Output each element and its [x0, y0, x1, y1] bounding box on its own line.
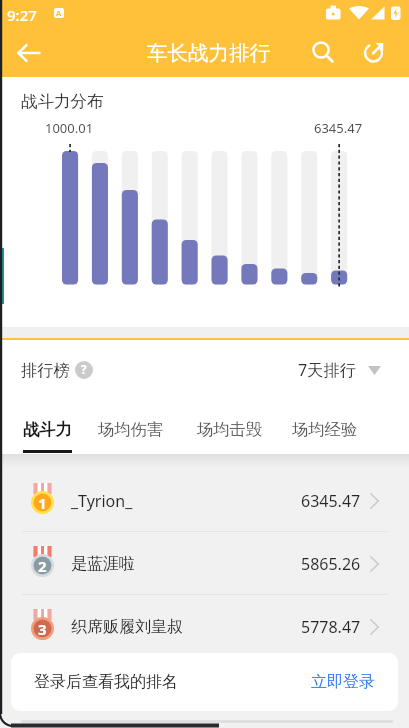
button[interactable]: 立即登录 [311, 672, 375, 692]
button[interactable]: 2 [0, 532, 409, 595]
staticText: 9:27 [7, 5, 37, 25]
button[interactable]: 场均伤害 [98, 407, 164, 451]
staticText: 车长战力排行 [147, 40, 270, 66]
button[interactable]: 登录后查看我的排名 [11, 653, 398, 711]
staticText: 登录后查看我的排名 [34, 672, 178, 692]
button[interactable]: 场均经验 [292, 407, 358, 451]
staticText: _Tyrion_ [71, 490, 133, 512]
staticText: 战斗力 [23, 419, 72, 440]
staticText: 是蓝涯啦 [71, 554, 135, 574]
staticText: 战斗力分布 [21, 91, 104, 112]
staticText: 6345.47 [301, 490, 361, 512]
staticText: 7天排行 [298, 359, 356, 381]
staticText: 1000.01 [45, 119, 94, 137]
staticText: 1 [38, 493, 47, 513]
button[interactable]: 1 [0, 469, 409, 532]
button[interactable]: Search [300, 28, 346, 77]
button[interactable]: 7天排行 [298, 356, 381, 384]
other: Help [75, 361, 93, 379]
staticText: A [56, 8, 62, 18]
staticText: 场均经验 [292, 419, 358, 440]
staticText: 场均伤害 [98, 419, 164, 440]
staticText: 排行榜 [21, 360, 70, 380]
button[interactable]: 排行榜 [21, 356, 93, 384]
button[interactable]: Refresh [350, 28, 396, 77]
staticText: 2 [38, 556, 47, 576]
button[interactable]: Back [0, 28, 56, 77]
staticText: 3 [38, 619, 47, 639]
button[interactable]: 战斗力 [23, 407, 72, 451]
staticText: 5778.47 [301, 616, 361, 638]
staticText: 织席贩履刘皇叔 [71, 617, 183, 637]
staticText: 场均击毁 [197, 419, 263, 440]
staticText: 6345.47 [314, 119, 363, 137]
staticText: ? [81, 362, 87, 378]
staticText: 5865.26 [301, 553, 361, 575]
button[interactable]: 场均击毁 [197, 407, 263, 451]
staticText: 立即登录 [311, 672, 375, 692]
button[interactable]: 3 [0, 595, 409, 658]
